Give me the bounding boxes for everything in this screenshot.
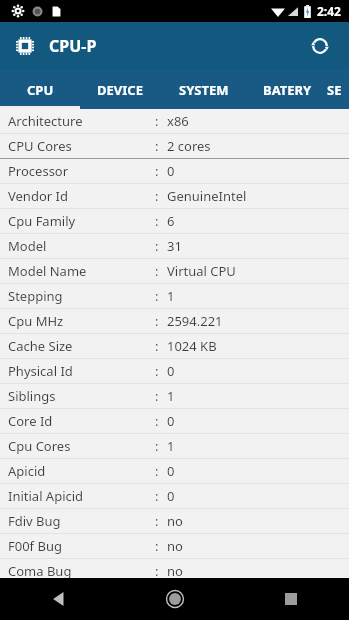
staticText: no (167, 562, 183, 578)
staticText: 0 (167, 412, 175, 430)
button[interactable]: Home (117, 578, 233, 620)
staticText: : (155, 437, 159, 455)
staticText: CPU (27, 81, 54, 99)
button[interactable]: Stepping (0, 284, 349, 308)
staticText: : (155, 387, 159, 405)
button[interactable]: Initial Apicid (0, 484, 349, 508)
staticText: SE (327, 81, 342, 99)
button[interactable]: Fdiv Bug (0, 509, 349, 533)
staticText: Vendor Id (8, 187, 68, 205)
staticText: : (155, 462, 159, 480)
staticText: : (155, 562, 159, 578)
button[interactable]: Physical Id (0, 359, 349, 383)
button[interactable]: Model (0, 234, 349, 258)
staticText: : (155, 537, 159, 555)
staticText: Stepping (8, 287, 63, 305)
staticText: GenuineIntel (167, 187, 247, 205)
staticText: CPU Cores (8, 137, 72, 155)
button[interactable]: Cache Size (0, 334, 349, 358)
staticText: 31 (167, 237, 182, 255)
button[interactable]: Cpu MHz (0, 309, 349, 333)
staticText: 1024 KB (167, 337, 217, 355)
staticText: no (167, 537, 183, 555)
staticText: 0 (167, 162, 175, 180)
staticText: : (155, 162, 159, 180)
button[interactable]: Processor (0, 159, 349, 183)
staticText: SYSTEM (179, 81, 229, 99)
button[interactable]: DEVICE (80, 70, 160, 109)
button[interactable]: BATERY (247, 70, 327, 109)
staticText: : (155, 212, 159, 230)
button[interactable]: SE (327, 70, 349, 109)
staticText: Cpu MHz (8, 312, 64, 330)
staticText: Model Name (8, 262, 87, 280)
button[interactable]: Cpu Family (0, 209, 349, 233)
staticText: : (155, 487, 159, 505)
button[interactable]: Model Name (0, 259, 349, 283)
button[interactable]: Recent apps (233, 578, 349, 620)
button[interactable]: CPU (0, 70, 80, 109)
staticText: 0 (167, 487, 175, 505)
button[interactable]: CPU Cores (0, 134, 349, 158)
staticText: Cpu Family (8, 212, 76, 230)
staticText: : (155, 137, 159, 155)
staticText: Siblings (8, 387, 56, 405)
staticText: DEVICE (97, 81, 143, 99)
button[interactable]: SYSTEM (160, 70, 247, 109)
staticText: : (155, 262, 159, 280)
button[interactable]: Back (0, 578, 117, 620)
button[interactable]: Coma Bug (0, 559, 349, 578)
button[interactable]: Refresh (301, 27, 339, 65)
staticText: BATERY (263, 81, 312, 99)
staticText: 2594.221 (167, 312, 223, 330)
staticText: : (155, 312, 159, 330)
staticText: Core Id (8, 412, 53, 430)
staticText: Initial Apicid (8, 487, 84, 505)
staticText: 6 (167, 212, 175, 230)
staticText: no (167, 512, 183, 530)
staticText: : (155, 412, 159, 430)
button[interactable]: Architecture (0, 109, 349, 133)
staticText: Model (8, 237, 47, 255)
staticText: Coma Bug (8, 562, 72, 578)
staticText: Cpu Cores (8, 437, 71, 455)
staticText: : (155, 112, 159, 130)
staticText: 0 (167, 462, 175, 480)
button[interactable]: Cpu Cores (0, 434, 349, 458)
staticText: Apicid (8, 462, 46, 480)
staticText: Processor (8, 162, 69, 180)
staticText: CPU-P (49, 35, 97, 57)
staticText: Virtual CPU (167, 262, 236, 280)
staticText: Physical Id (8, 362, 73, 380)
staticText: 0 (167, 362, 175, 380)
staticText: 2:42 (317, 3, 341, 19)
staticText: : (155, 337, 159, 355)
staticText: : (155, 287, 159, 305)
staticText: Fdiv Bug (8, 512, 61, 530)
staticText: 2 cores (167, 137, 211, 155)
button[interactable]: Vendor Id (0, 184, 349, 208)
staticText: Architecture (8, 112, 83, 130)
button[interactable]: Apicid (0, 459, 349, 483)
staticText: Cache Size (8, 337, 73, 355)
staticText: x86 (167, 112, 189, 130)
staticText: 1 (167, 387, 175, 405)
staticText: : (155, 512, 159, 530)
staticText: : (155, 187, 159, 205)
staticText: F00f Bug (8, 537, 62, 555)
staticText: : (155, 237, 159, 255)
button[interactable]: Siblings (0, 384, 349, 408)
button[interactable]: Core Id (0, 409, 349, 433)
staticText: : (155, 362, 159, 380)
staticText: 1 (167, 437, 175, 455)
button[interactable]: F00f Bug (0, 534, 349, 558)
staticText: 1 (167, 287, 175, 305)
